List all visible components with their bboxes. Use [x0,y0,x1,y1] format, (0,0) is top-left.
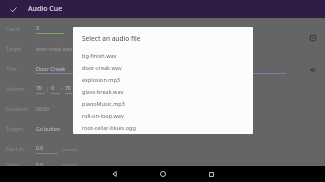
staticText: roll-on-loop.wav [82,112,124,119]
staticText: Trigger: [6,126,25,133]
staticText: 70 [65,85,71,92]
staticText: 0.0 [36,162,44,166]
button[interactable]: Settings [307,32,319,44]
staticText: door-creak.wav [82,64,122,71]
staticText: Select an audio file [82,34,141,43]
button[interactable]: roll-on-loop.wav [73,109,253,121]
staticText: Duration: [6,106,29,113]
staticText: Door Creak [36,65,66,72]
button[interactable]: Back [106,166,124,182]
button[interactable]: explosion.mp3 [73,73,253,85]
staticText: seconds [62,147,78,152]
button[interactable]: bg-finish.wav [73,49,253,61]
staticText: Target: [6,46,23,53]
staticText: Audio Cue [28,4,63,14]
staticText: explosion.mp3 [82,76,120,83]
staticText: | [45,86,51,93]
staticText: door-creak.wav [36,46,73,53]
staticText: 00:00 [36,106,49,113]
staticText: Delay: [6,162,21,166]
button[interactable]: Home [154,166,172,182]
staticText: 3 [36,25,39,32]
button[interactable]: Recent apps [202,166,220,182]
staticText: Title: [6,66,18,73]
staticText: root-cellar-blues.ogg [82,124,136,131]
staticText: 0.0 [36,145,44,152]
staticText: glass-break.wav [82,88,124,95]
button[interactable]: root-cellar-blues.ogg [73,121,253,133]
button[interactable]: glass-break.wav [73,85,253,97]
button[interactable]: Volume [307,64,319,76]
staticText: seconds [62,162,78,166]
staticText: Start at: [6,146,25,153]
staticText: Go button [36,126,60,133]
staticText: pianoMusic.mp3 [82,100,125,107]
button[interactable]: door-creak.wav [73,61,253,73]
staticText: / [60,86,65,93]
staticText: bg-finish.wav [82,52,117,59]
button[interactable]: pianoMusic.mp3 [73,97,253,109]
staticText: 70 [36,85,42,92]
staticText: 0 [51,85,54,92]
button[interactable]: Save [6,2,20,16]
staticText: Volume: [6,86,26,93]
staticText: Cue #: [6,26,21,33]
